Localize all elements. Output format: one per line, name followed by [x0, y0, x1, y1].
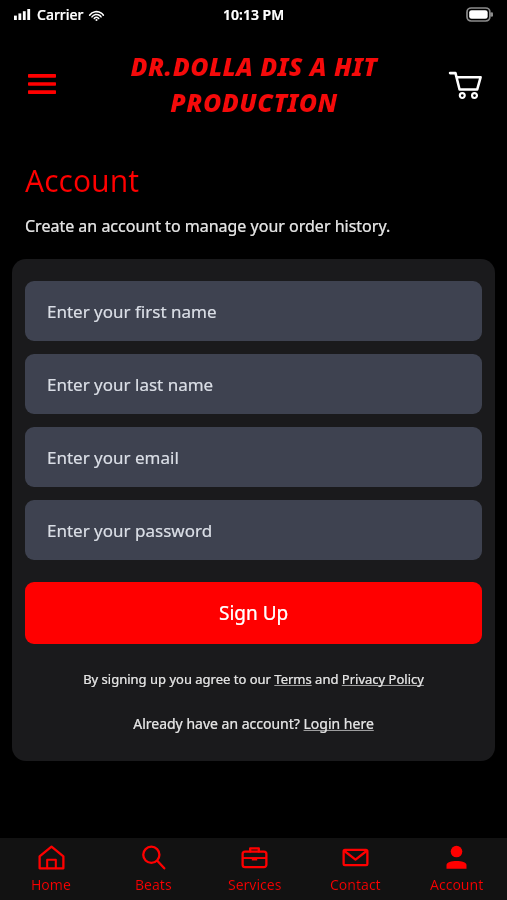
staticText: By signing up you agree to our Terms and… — [83, 670, 424, 688]
button[interactable]: Cart — [439, 58, 491, 110]
staticText: 10:13 PM — [223, 5, 285, 24]
button[interactable]: Enter your first name — [25, 281, 482, 341]
staticText: Enter your last name — [47, 373, 214, 396]
staticText: Beats — [135, 875, 172, 894]
staticText: Home — [31, 875, 71, 894]
staticText: Already have an account? Login here — [133, 714, 374, 733]
button[interactable]: Services — [204, 838, 305, 900]
staticText: Carrier — [37, 5, 84, 24]
staticText: Account — [25, 160, 140, 201]
button[interactable]: Menu — [16, 58, 68, 110]
staticText: DR.DOLLA DIS A HIT — [130, 49, 378, 83]
button[interactable]: By signing up you agree to our Terms and… — [25, 670, 482, 688]
button[interactable]: Sign Up — [25, 582, 482, 644]
button[interactable]: Enter your last name — [25, 354, 482, 414]
button[interactable]: Home — [0, 838, 102, 900]
staticText: Enter your first name — [47, 300, 217, 323]
staticText: Services — [228, 875, 282, 894]
button[interactable]: Beats — [102, 838, 204, 900]
button[interactable]: Contact — [305, 838, 406, 900]
staticText: Enter your email — [47, 446, 179, 469]
staticText: Account — [430, 875, 484, 894]
staticText: Sign Up — [219, 600, 289, 626]
button[interactable]: Already have an account? Login here — [25, 714, 482, 733]
staticText: Contact — [330, 875, 381, 894]
button[interactable]: Enter your password — [25, 500, 482, 560]
button[interactable]: Enter your email — [25, 427, 482, 487]
staticText: Enter your password — [47, 519, 213, 542]
staticText: Create an account to manage your order h… — [25, 215, 391, 237]
button[interactable]: Account — [406, 838, 507, 900]
staticText: PRODUCTION — [170, 85, 338, 119]
